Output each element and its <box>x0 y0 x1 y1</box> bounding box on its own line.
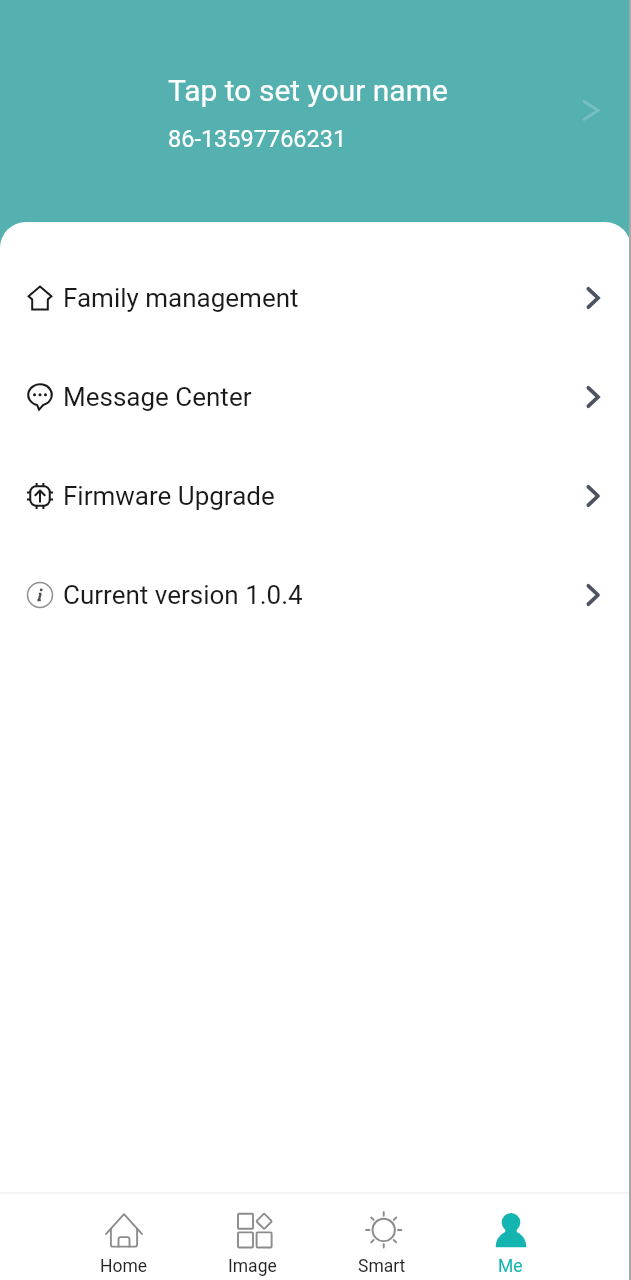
staticText: Tap to set your name <box>168 73 448 108</box>
button[interactable]: Family management <box>0 276 631 320</box>
staticText: Smart <box>358 1256 406 1277</box>
staticText: 86-13597766231 <box>168 125 347 153</box>
button[interactable]: Current version 1.0.4 <box>0 573 631 617</box>
staticText: Message Center <box>63 382 252 412</box>
staticText: Current version 1.0.4 <box>63 580 303 610</box>
button[interactable]: Image <box>188 1194 317 1277</box>
staticText: Home <box>100 1256 148 1277</box>
button[interactable]: Tap to set your name <box>0 0 631 222</box>
button[interactable]: Home <box>59 1194 188 1277</box>
staticText: Me <box>498 1256 523 1277</box>
button[interactable]: Smart <box>317 1194 446 1277</box>
button[interactable]: Me <box>446 1194 575 1277</box>
button[interactable]: Message Center <box>0 375 631 419</box>
button[interactable]: Firmware Upgrade <box>0 474 631 518</box>
button[interactable]: Edit profile <box>578 96 604 122</box>
staticText: Family management <box>63 283 299 313</box>
staticText: Firmware Upgrade <box>63 481 275 511</box>
staticText: Image <box>228 1256 277 1277</box>
